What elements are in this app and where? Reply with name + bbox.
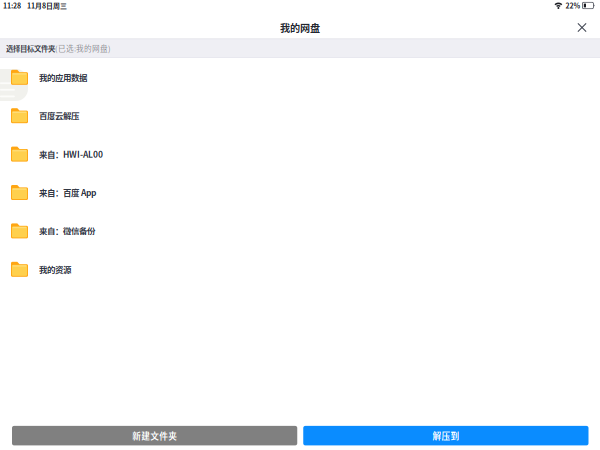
button[interactable]: 我的应用数据 [0,58,600,96]
button[interactable]: 来自：HWI-AL00 [0,135,600,173]
staticText: (已选:我的网盘) [55,43,111,54]
staticText: 来自：微信备份 [39,225,95,237]
button[interactable]: 解压到 [303,426,588,445]
staticText: 选择目标文件夹 [6,43,55,54]
staticText: 我的资源 [39,263,71,275]
button[interactable]: 我的资源 [0,250,600,288]
staticText: 我的网盘 [280,20,320,35]
staticText: 来自：百度 App [39,186,96,199]
staticText: 百度云解压 [39,109,79,122]
staticText: 我的应用数据 [39,71,87,83]
staticText: 新建文件夹 [132,429,177,442]
staticText: 解压到 [432,429,459,442]
button[interactable]: Close [571,16,593,38]
button[interactable]: 来自：微信备份 [0,212,600,250]
button[interactable]: 新建文件夹 [12,426,297,445]
button[interactable]: 百度云解压 [0,96,600,135]
staticText: 22% [565,0,580,10]
staticText: 11月8日周三 [27,0,67,10]
staticText: 来自：HWI-AL00 [39,148,103,160]
button[interactable]: 来自：百度 App [0,173,600,212]
staticText: 11:28 [3,0,21,10]
